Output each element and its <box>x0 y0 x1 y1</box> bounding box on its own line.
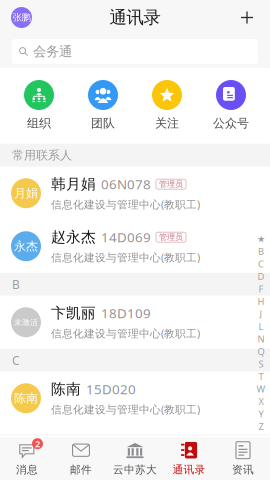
staticText: J <box>259 308 262 320</box>
staticText: 信息化建设与管理中心(教职工) <box>51 197 200 211</box>
staticText: 公众号 <box>213 116 249 131</box>
staticText: 陈南 <box>14 391 38 406</box>
button[interactable]: 云中苏大 <box>108 435 162 480</box>
staticText: N <box>257 333 264 345</box>
button[interactable]: Add contact <box>235 5 259 29</box>
staticText: 信息化建设与管理中心(教职工) <box>51 250 200 264</box>
staticText: B <box>258 245 264 258</box>
staticText: 永杰 <box>14 239 38 254</box>
staticText: H <box>257 295 264 308</box>
staticText: 18D109 <box>101 304 151 322</box>
staticText: 信息化建设与管理中心(教职工) <box>51 326 200 340</box>
staticText: 2 <box>35 437 40 450</box>
button[interactable]: 陈南 <box>0 372 270 425</box>
staticText: 云中苏大 <box>113 463 157 476</box>
button[interactable]: 永杰 <box>0 220 270 273</box>
staticText: 管理员 <box>159 179 183 189</box>
button[interactable]: 关注 <box>138 80 196 131</box>
staticText: 常用联系人 <box>12 148 72 163</box>
button[interactable]: 会务通 <box>0 35 270 68</box>
staticText: F <box>258 283 263 295</box>
staticText: 未激活 <box>14 317 38 327</box>
button[interactable]: Profile <box>11 7 32 28</box>
staticText: 卞凯丽 <box>51 304 96 322</box>
staticText: 赵永杰 <box>51 228 96 246</box>
staticText: 关注 <box>155 116 179 131</box>
staticText: 通讯录 <box>172 463 205 476</box>
staticText: C <box>258 258 264 270</box>
staticText: 团队 <box>91 116 115 131</box>
staticText: Q <box>257 345 264 358</box>
staticText: 信息化建设与管理中心(教职工) <box>51 402 200 416</box>
staticText: 06N078 <box>101 175 151 193</box>
staticText: 管理员 <box>159 232 183 242</box>
staticText: 14D069 <box>101 228 151 246</box>
staticText: X <box>258 395 263 408</box>
staticText: 组织 <box>27 116 51 131</box>
button[interactable]: 2 <box>0 435 54 480</box>
button[interactable]: 邮件 <box>54 435 108 480</box>
button[interactable]: 月娟 <box>0 167 270 220</box>
staticText: C <box>12 352 20 368</box>
staticText: D <box>257 270 264 283</box>
staticText: B <box>12 276 20 292</box>
button[interactable]: 团队 <box>74 80 132 131</box>
staticText: L <box>258 320 263 333</box>
staticText: 消息 <box>16 463 38 476</box>
staticText: 月娟 <box>14 186 38 201</box>
staticText: 会务通 <box>33 43 72 60</box>
staticText: 15D020 <box>86 380 136 398</box>
button[interactable]: 公众号 <box>202 80 260 131</box>
button[interactable]: Alphabet index <box>255 233 267 433</box>
staticText: 张鹏 <box>12 12 30 23</box>
button[interactable]: 资讯 <box>216 435 270 480</box>
staticText: 邮件 <box>70 463 92 476</box>
staticText: T <box>258 370 263 383</box>
staticText: 资讯 <box>232 463 254 476</box>
staticText: 陈南 <box>51 380 81 398</box>
button[interactable]: 未激活 <box>0 296 270 349</box>
button[interactable]: 通讯录 <box>162 435 216 480</box>
staticText: Y <box>258 408 263 420</box>
staticText: 通讯录 <box>109 7 160 28</box>
staticText: Z <box>258 420 263 433</box>
button[interactable]: 组织 <box>10 80 68 131</box>
staticText: 韩月娟 <box>51 175 96 193</box>
staticText: S <box>258 358 263 370</box>
staticText: ★ <box>257 234 265 244</box>
staticText: W <box>256 383 265 395</box>
